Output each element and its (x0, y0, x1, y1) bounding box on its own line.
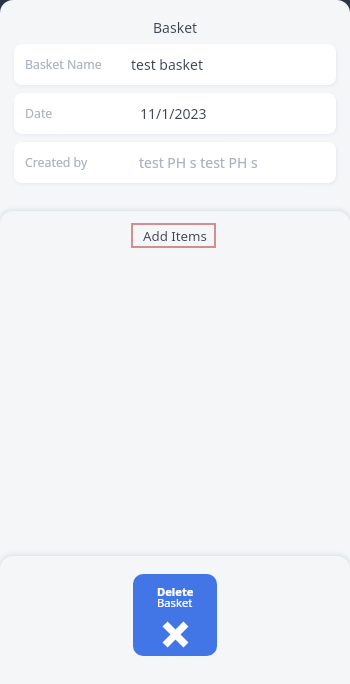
staticText: Basket (157, 595, 193, 610)
staticText: test basket (131, 55, 203, 74)
button[interactable]: Created by (14, 142, 336, 183)
button[interactable]: Add Items (131, 223, 216, 248)
staticText: Delete (157, 584, 194, 599)
staticText: Add Items (143, 227, 207, 245)
button[interactable]: Basket Name (14, 44, 336, 85)
staticText: Basket (153, 18, 198, 37)
staticText: test PH s test PH s (139, 153, 258, 172)
button[interactable]: Date (14, 93, 336, 134)
other: Delete Basket (161, 620, 190, 649)
staticText: Date (25, 105, 53, 122)
staticText: 11/1/2023 (140, 104, 207, 123)
button[interactable]: Delete (133, 574, 217, 656)
staticText: Created by (25, 154, 88, 171)
staticText: Basket Name (25, 56, 102, 73)
